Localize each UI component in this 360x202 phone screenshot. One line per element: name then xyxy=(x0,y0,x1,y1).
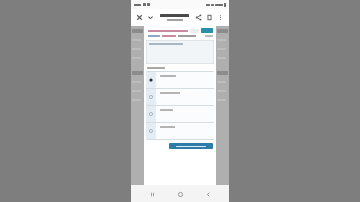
button[interactable]: Close xyxy=(134,12,145,23)
button[interactable]: Share xyxy=(193,12,204,23)
button[interactable] xyxy=(146,40,214,64)
button[interactable] xyxy=(146,106,214,122)
button[interactable]: Expand xyxy=(145,12,156,23)
button[interactable] xyxy=(146,123,214,139)
button[interactable]: Home xyxy=(173,187,187,201)
button[interactable]: Recent apps xyxy=(145,187,159,201)
button[interactable]: More options xyxy=(215,12,226,23)
button[interactable] xyxy=(160,14,189,21)
button[interactable] xyxy=(146,72,214,88)
button[interactable] xyxy=(146,89,214,105)
button[interactable]: Back xyxy=(201,187,215,201)
button[interactable]: Action xyxy=(201,28,213,33)
button[interactable]: Submit xyxy=(169,143,213,149)
button[interactable]: Bookmark xyxy=(204,12,215,23)
